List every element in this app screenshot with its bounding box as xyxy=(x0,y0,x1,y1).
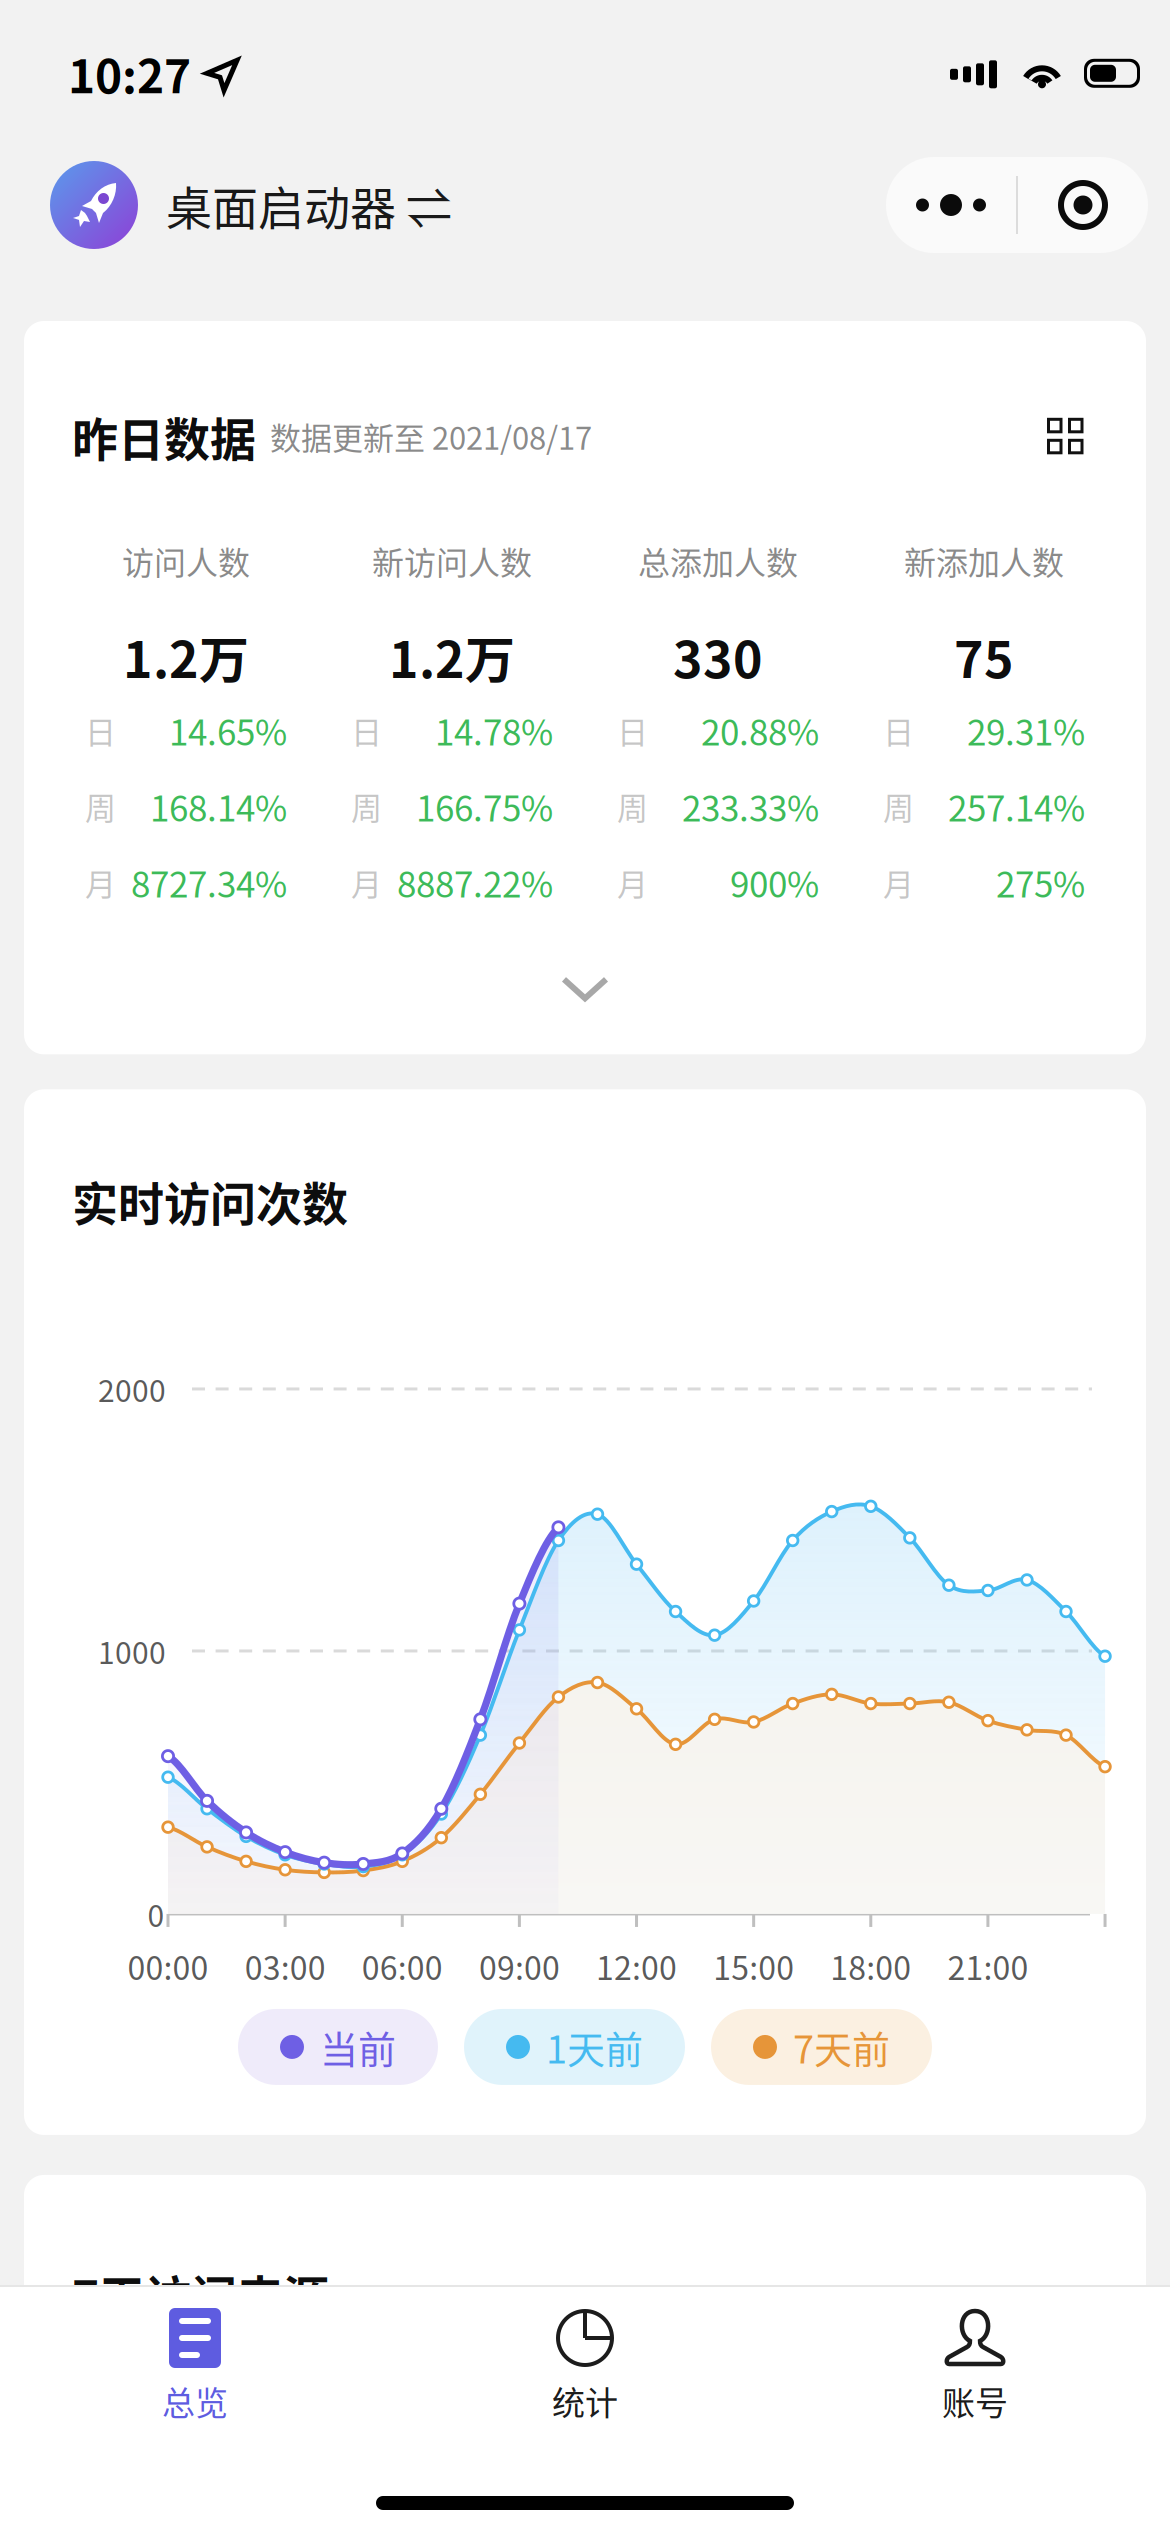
button[interactable]: 7天前 xyxy=(711,2009,932,2085)
staticText: 75 xyxy=(954,620,1014,692)
staticText: 1天前 xyxy=(546,2019,643,2074)
staticText: 月 xyxy=(85,860,116,905)
staticText: 09:00 xyxy=(479,1943,560,1989)
staticText: 8727.34% xyxy=(131,857,287,908)
staticText: 桌面启动器 ⇌ xyxy=(166,172,452,238)
staticText: 新添加人数 xyxy=(904,538,1064,584)
staticText: 日 xyxy=(85,708,116,753)
staticText: 166.75% xyxy=(416,781,553,832)
staticText: 330 xyxy=(673,620,763,692)
staticText: 日 xyxy=(617,708,648,753)
button[interactable]: More xyxy=(886,157,1016,253)
staticText: 总览 xyxy=(162,2377,228,2425)
button[interactable]: 账号 xyxy=(780,2307,1170,2425)
staticText: 8887.22% xyxy=(397,857,553,908)
staticText: 03:00 xyxy=(245,1943,326,1989)
staticText: 周 xyxy=(883,784,914,829)
staticText: 2000 xyxy=(98,1367,166,1411)
staticText: 昨日数据 xyxy=(72,403,256,470)
staticText: 新访问人数 xyxy=(372,538,532,584)
staticText: 21:00 xyxy=(947,1943,1028,1989)
button[interactable]: 桌面启动器 ⇌ xyxy=(0,161,452,249)
button[interactable]: 当前 xyxy=(238,2009,438,2085)
staticText: 当前 xyxy=(320,2019,396,2074)
staticText: 周 xyxy=(617,784,648,829)
staticText: 18:00 xyxy=(830,1943,911,1989)
staticText: 统计 xyxy=(552,2377,618,2425)
staticText: 日 xyxy=(883,708,914,753)
staticText: 月 xyxy=(883,860,914,905)
staticText: 实时访问次数 xyxy=(72,1167,348,1234)
staticText: 1.2万 xyxy=(123,620,249,692)
staticText: 访问人数 xyxy=(122,538,250,584)
button[interactable]: 统计 xyxy=(390,2307,780,2425)
staticText: 日 xyxy=(351,708,382,753)
staticText: 14.65% xyxy=(169,705,287,756)
staticText: 29.31% xyxy=(967,705,1085,756)
staticText: 275% xyxy=(996,857,1085,908)
staticText: 900% xyxy=(730,857,819,908)
staticText: 20.88% xyxy=(701,705,819,756)
button[interactable]: Switch layout xyxy=(1047,418,1084,455)
button[interactable]: 1天前 xyxy=(464,2009,685,2085)
staticText: 总添加人数 xyxy=(638,538,798,584)
staticText: 1.2万 xyxy=(389,620,515,692)
staticText: 12:00 xyxy=(596,1943,677,1989)
staticText: 00:00 xyxy=(127,1943,208,1989)
staticText: 1000 xyxy=(98,1629,166,1673)
staticText: 周 xyxy=(85,784,116,829)
staticText: 06:00 xyxy=(362,1943,443,1989)
staticText: 15:00 xyxy=(713,1943,794,1989)
button[interactable]: Close mini program xyxy=(1018,157,1148,253)
staticText: 233.33% xyxy=(682,781,819,832)
staticText: 周 xyxy=(351,784,382,829)
staticText: 0 xyxy=(147,1892,164,1936)
button[interactable]: 总览 xyxy=(0,2307,390,2425)
staticText: 月 xyxy=(617,860,648,905)
staticText: 14.78% xyxy=(435,705,553,756)
staticText: 7天前 xyxy=(793,2019,890,2074)
button[interactable]: Show more metrics xyxy=(560,974,610,1004)
staticText: 10:27 xyxy=(68,40,191,107)
staticText: 7天访问来源 xyxy=(72,2261,329,2328)
staticText: 月 xyxy=(351,860,382,905)
staticText: 257.14% xyxy=(948,781,1085,832)
staticText: 数据更新至 2021/08/17 xyxy=(256,414,592,459)
staticText: 账号 xyxy=(942,2377,1008,2425)
staticText: 168.14% xyxy=(150,781,287,832)
